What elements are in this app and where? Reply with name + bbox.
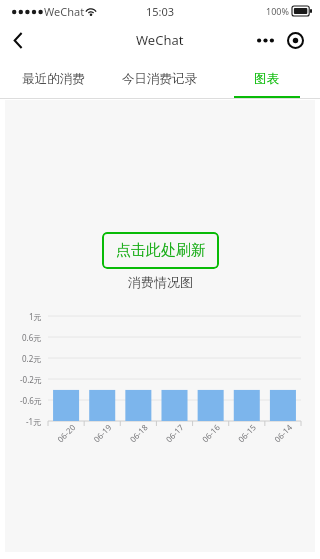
staticText: 15:03 — [146, 4, 175, 19]
button[interactable]: More — [252, 27, 278, 53]
staticText: 今日消费记录 — [122, 71, 197, 87]
staticText: 100% — [266, 5, 289, 17]
staticText: 点击此处刷新 — [116, 241, 206, 260]
staticText: WeChat — [44, 4, 85, 19]
button[interactable]: 图表 — [213, 58, 320, 99]
staticText: WeChat — [136, 31, 184, 49]
staticText: 图表 — [254, 71, 279, 87]
staticText: 最近的消费 — [22, 71, 85, 87]
button[interactable]: 今日消费记录 — [106, 58, 213, 99]
button[interactable]: Back — [0, 22, 36, 58]
button[interactable]: 最近的消费 — [0, 58, 106, 99]
button[interactable]: 点击此处刷新 — [102, 232, 219, 269]
button[interactable]: Target — [282, 27, 308, 53]
staticText: 消费情况图 — [128, 274, 193, 290]
